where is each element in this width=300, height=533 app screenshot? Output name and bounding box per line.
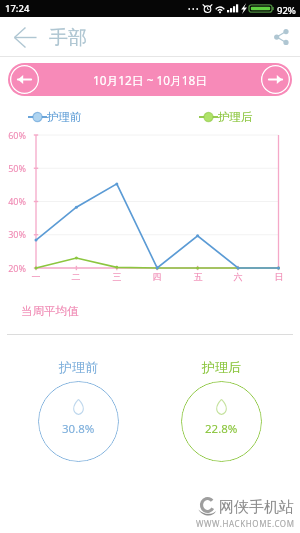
staticText: 30% <box>1 228 26 240</box>
button[interactable]: Next week <box>261 65 290 94</box>
button[interactable]: Previous week <box>10 65 39 94</box>
staticText: 22.8% <box>205 421 238 437</box>
staticText: 40% <box>1 195 26 207</box>
button[interactable]: 22.8% <box>181 381 262 462</box>
staticText: 当周平均值 <box>21 304 79 318</box>
staticText: 20% <box>1 262 26 274</box>
staticText: 网侠手机站 <box>219 498 294 517</box>
staticText: 一 <box>28 271 44 282</box>
button[interactable]: 30.8% <box>38 381 119 462</box>
staticText: 日 <box>271 271 287 282</box>
staticText: 92% <box>277 4 296 17</box>
staticText: 手部 <box>49 26 87 50</box>
button[interactable]: Share <box>262 17 300 57</box>
staticText: WWW.HACKHOME.COM <box>196 518 295 529</box>
staticText: 护理前 <box>47 110 82 124</box>
staticText: 50% <box>1 162 26 174</box>
staticText: 三 <box>109 271 125 282</box>
staticText: 六 <box>230 271 246 282</box>
staticText: 护理后 <box>202 359 241 375</box>
staticText: 四 <box>149 271 165 282</box>
staticText: 护理后 <box>218 110 253 124</box>
staticText: 五 <box>190 271 206 282</box>
staticText: 二 <box>68 271 84 282</box>
staticText: 17:24 <box>5 2 30 15</box>
staticText: 30.8% <box>62 421 95 437</box>
staticText: 60% <box>1 129 26 141</box>
staticText: 护理前 <box>59 359 98 375</box>
button[interactable]: Back <box>3 17 47 57</box>
staticText: 10月12日 ~ 10月18日 <box>93 72 208 88</box>
